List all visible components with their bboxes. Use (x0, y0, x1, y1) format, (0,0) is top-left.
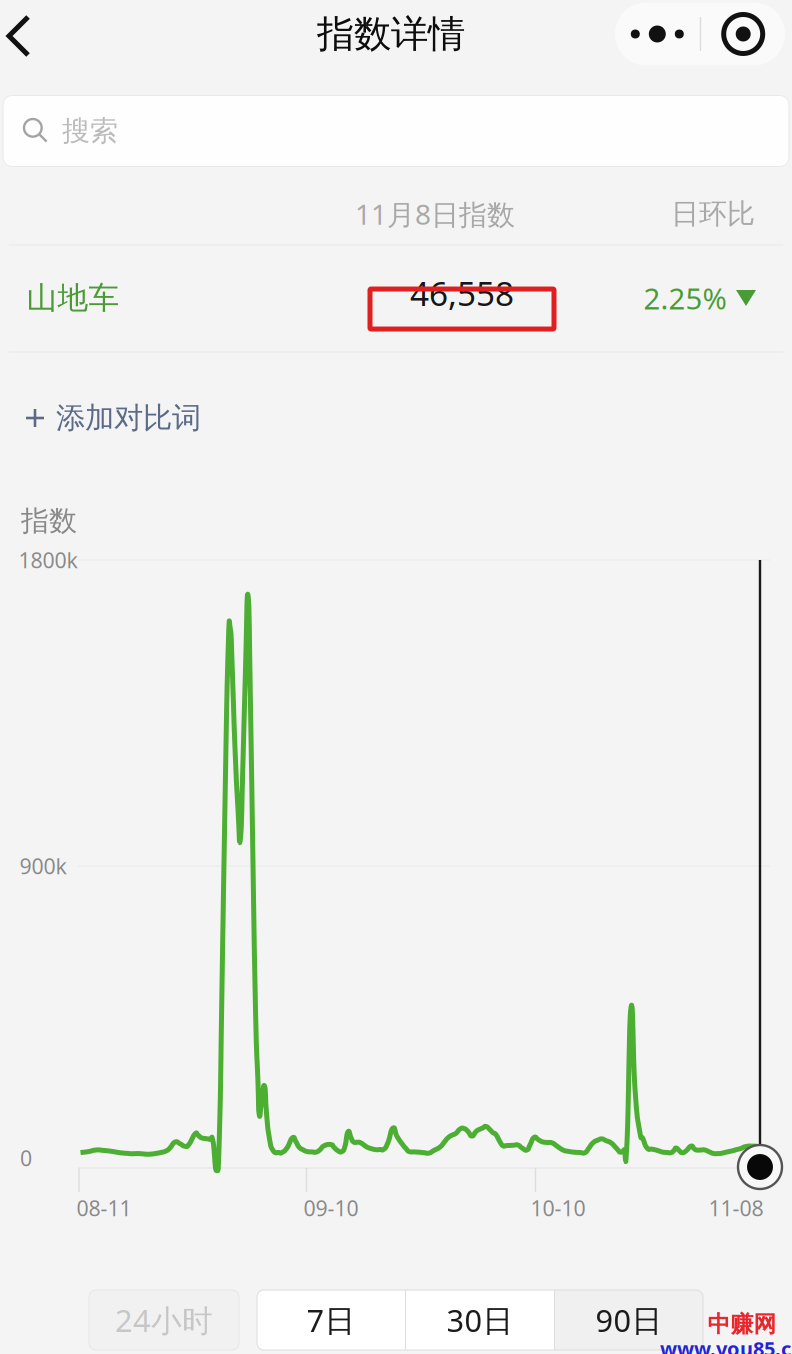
staticText: 09-10 (303, 1194, 358, 1222)
staticText: 指数详情 (317, 11, 465, 57)
staticText: 0 (20, 1144, 32, 1172)
button[interactable]: More options (615, 2, 700, 65)
staticText: 11月8日指数 (355, 195, 515, 233)
staticText: 7日 (306, 1300, 355, 1340)
button[interactable]: 搜索 (3, 95, 789, 166)
staticText: 日环比 (671, 197, 755, 231)
staticText: 2.25% (643, 278, 726, 317)
staticText: 90日 (595, 1300, 662, 1340)
button[interactable]: 30日 (406, 1290, 554, 1350)
staticText: 添加对比词 (56, 400, 201, 436)
button[interactable]: Back (4, 2, 54, 70)
button[interactable]: 24小时 (89, 1290, 239, 1350)
staticText: 46,558 (410, 271, 514, 315)
button[interactable]: 山地车 (0, 245, 792, 351)
staticText: 中赚网 (707, 1310, 776, 1338)
button[interactable]: Close mini program (701, 2, 785, 65)
button[interactable]: 7日 (257, 1290, 405, 1350)
staticText: 1800k (18, 546, 77, 574)
button[interactable]: 90日 (555, 1290, 703, 1350)
staticText: 30日 (446, 1300, 513, 1340)
staticText: 指数 (21, 504, 77, 538)
staticText: 900k (19, 852, 66, 880)
staticText: 山地车 (26, 279, 119, 317)
staticText: www.you85.com (660, 1335, 792, 1354)
staticText: 搜索 (62, 114, 118, 148)
staticText: 10-10 (530, 1194, 585, 1222)
button[interactable]: 添加对比词 (0, 379, 400, 457)
staticText: 11-08 (708, 1194, 763, 1222)
staticText: 08-11 (76, 1194, 131, 1222)
staticText: 24小时 (115, 1300, 213, 1340)
